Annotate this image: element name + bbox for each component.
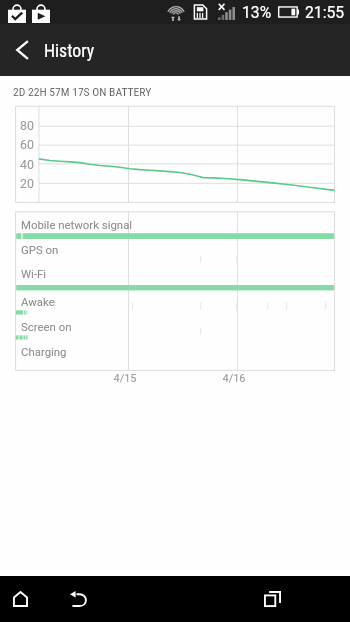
staticText: Wi-Fi xyxy=(21,267,47,280)
staticText: GPS on xyxy=(21,243,59,256)
button[interactable]: Navigate up xyxy=(0,24,44,76)
staticText: 4/16 xyxy=(209,372,259,385)
staticText: 80 xyxy=(0,118,34,133)
button[interactable]: Recent apps xyxy=(252,576,292,622)
staticText: History xyxy=(44,40,95,61)
staticText: Mobile network signal xyxy=(21,218,133,231)
staticText: 20 xyxy=(0,176,34,191)
staticText: 2D 22H 57M 17S ON BATTERY xyxy=(13,85,152,99)
staticText: Awake xyxy=(21,295,55,308)
staticText: 13% xyxy=(242,3,272,21)
staticText: 4/15 xyxy=(100,372,150,385)
staticText: 21:55 xyxy=(305,3,345,21)
staticText: Screen on xyxy=(21,320,72,333)
button[interactable]: Home xyxy=(0,576,40,622)
staticText: 60 xyxy=(0,137,34,152)
button[interactable]: Back xyxy=(58,576,98,622)
staticText: Charging xyxy=(21,345,67,358)
staticText: 40 xyxy=(0,157,34,172)
